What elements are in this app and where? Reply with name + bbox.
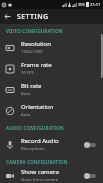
button[interactable]: Orientation <box>0 100 103 121</box>
button[interactable]: Show camera <box>0 168 103 183</box>
staticText: SETTING <box>17 12 49 22</box>
button[interactable]: Toggle Record Audio <box>84 140 98 150</box>
staticText: Show front camera <box>21 177 59 183</box>
button[interactable]: Frame rate <box>0 58 103 79</box>
staticText: 1920x1080 <box>21 49 43 55</box>
button[interactable]: Toggle Show camera <box>84 171 98 181</box>
staticText: Auto <box>21 91 31 97</box>
button[interactable]: Back <box>0 9 15 24</box>
staticText: VIDEO CONFIGURATION <box>6 28 63 34</box>
staticText: 30 FPS <box>21 70 34 76</box>
staticText: 21:11 <box>90 2 101 7</box>
staticText: Orientation <box>21 103 54 111</box>
staticText: Microphone <box>21 146 45 152</box>
staticText: Frame rate <box>21 61 52 69</box>
staticText: CAMERA CONFIGURATION <box>6 159 68 165</box>
staticText: Bit rate <box>21 82 42 90</box>
staticText: Resolution <box>21 40 51 48</box>
button[interactable]: Bit rate <box>0 79 103 100</box>
staticText: Show camera <box>21 168 59 176</box>
staticText: AUDIO CONFIGURATION <box>6 125 64 131</box>
button[interactable]: Resolution <box>0 37 103 58</box>
staticText: Auto <box>21 112 31 118</box>
button[interactable]: Record Audio <box>0 134 103 155</box>
staticText: Record Audio <box>21 137 59 145</box>
staticText: 35% <box>78 2 85 7</box>
